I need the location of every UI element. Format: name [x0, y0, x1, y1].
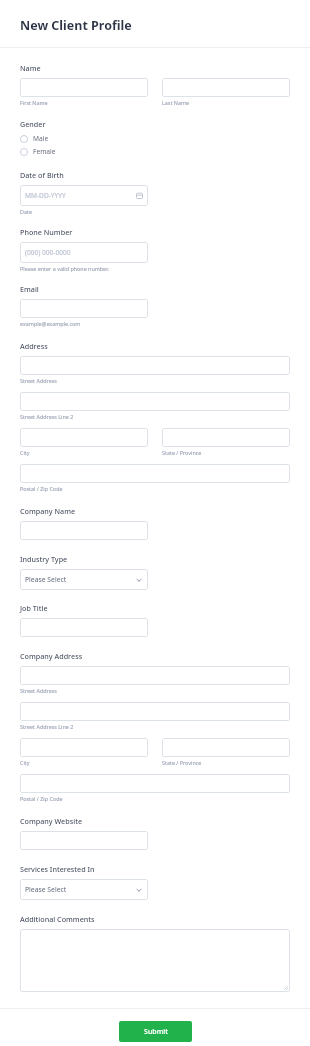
button[interactable]: Postal / Zip Code	[20, 774, 290, 793]
button[interactable]: State / Province	[162, 428, 290, 447]
staticText: Job Title	[20, 603, 48, 613]
staticText: MM-DD-YYYY	[25, 191, 66, 200]
button[interactable]: Additional Comments	[20, 929, 290, 992]
staticText: Street Address Line 2	[20, 723, 74, 730]
staticText: Postal / Zip Code	[20, 485, 63, 492]
staticText: City	[20, 449, 30, 456]
staticText: Submit	[144, 1027, 168, 1037]
staticText: example@example.com	[20, 320, 81, 327]
staticText: Address	[20, 341, 48, 351]
button[interactable]: Company Name	[20, 521, 148, 540]
staticText: Date of Birth	[20, 170, 64, 180]
staticText: Please enter a valid phone number.	[20, 265, 109, 272]
staticText: Industry Type	[20, 554, 68, 564]
staticText: Street Address	[20, 377, 57, 384]
button[interactable]: Company Website	[20, 831, 148, 850]
button[interactable]: Job Title	[20, 618, 148, 637]
staticText: Male	[33, 134, 49, 143]
staticText: City	[20, 759, 30, 766]
staticText: Company Address	[20, 651, 83, 661]
button[interactable]: Services Interested In	[20, 879, 148, 900]
staticText: First Name	[20, 99, 48, 106]
button[interactable]: Street Address Line 2	[20, 702, 290, 721]
button[interactable]: Female	[20, 145, 290, 158]
button[interactable]: Submit	[119, 1021, 192, 1042]
button[interactable]: City	[20, 738, 148, 757]
button[interactable]: Date of Birth	[20, 185, 148, 206]
staticText: Services Interested In	[20, 864, 95, 874]
staticText: Name	[20, 63, 41, 73]
button[interactable]: State / Province	[162, 738, 290, 757]
staticText: Please Select	[25, 575, 67, 584]
staticText: Female	[33, 147, 56, 156]
staticText: Company Name	[20, 506, 76, 516]
staticText: (000) 000-0000	[25, 248, 71, 257]
button[interactable]: Last Name	[162, 78, 290, 97]
button[interactable]: Male	[20, 132, 290, 145]
staticText: Street Address Line 2	[20, 413, 74, 420]
staticText: Phone Number	[20, 227, 73, 237]
staticText: Date	[20, 208, 32, 215]
staticText: Postal / Zip Code	[20, 795, 63, 802]
staticText: Company Website	[20, 816, 83, 826]
staticText: New Client Profile	[20, 17, 132, 34]
button[interactable]: City	[20, 428, 148, 447]
staticText: Last Name	[162, 99, 189, 106]
button[interactable]: First Name	[20, 78, 148, 97]
staticText: State / Province	[162, 449, 202, 456]
button[interactable]: Phone Number	[20, 242, 148, 263]
staticText: Additional Comments	[20, 914, 95, 924]
staticText: Please Select	[25, 885, 67, 894]
staticText: Email	[20, 284, 39, 294]
staticText: Street Address	[20, 687, 57, 694]
button[interactable]: Street Address	[20, 666, 290, 685]
button[interactable]: Email	[20, 299, 148, 318]
button[interactable]: Industry Type	[20, 569, 148, 590]
button[interactable]: Street Address Line 2	[20, 392, 290, 411]
button[interactable]: Street Address	[20, 356, 290, 375]
button[interactable]: Postal / Zip Code	[20, 464, 290, 483]
staticText: Gender	[20, 119, 46, 129]
staticText: State / Province	[162, 759, 202, 766]
